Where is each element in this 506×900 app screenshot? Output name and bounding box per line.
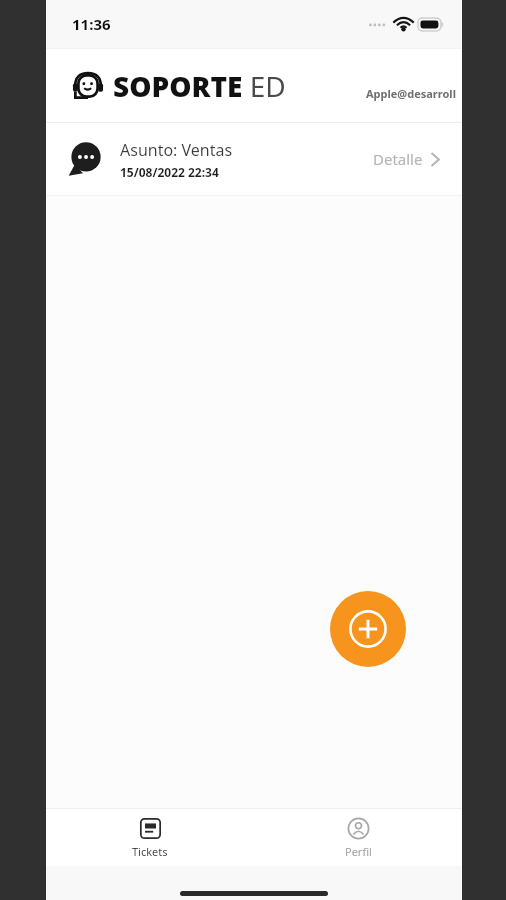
button[interactable]: Perfil <box>254 817 462 859</box>
staticText: 15/08/2022 22:34 <box>120 164 219 180</box>
staticText: 11:36 <box>72 14 111 34</box>
button[interactable]: Tickets <box>46 817 254 859</box>
button[interactable]: Asunto: Ventas <box>46 123 462 196</box>
staticText: Apple@desarrollo.com <box>366 86 462 101</box>
staticText: Tickets <box>132 844 168 859</box>
staticText: Asunto: Ventas <box>120 139 233 161</box>
staticText: SOPORTE ED <box>113 67 286 105</box>
staticText: Detalle <box>373 149 423 169</box>
staticText: Perfil <box>345 844 372 859</box>
button[interactable]: Nuevo ticket <box>330 591 406 667</box>
